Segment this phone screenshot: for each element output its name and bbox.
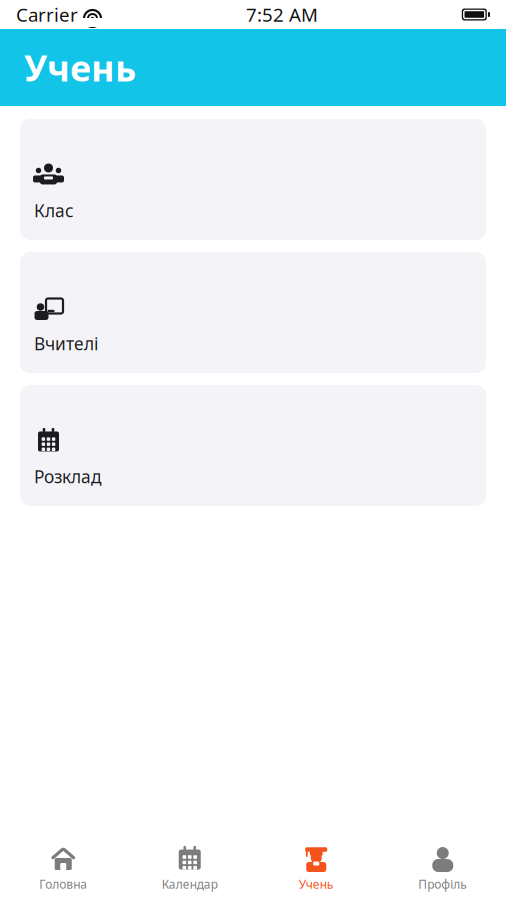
button[interactable]: Розклад: [20, 385, 486, 506]
staticText: Календар: [162, 876, 218, 892]
staticText: Профіль: [418, 876, 467, 892]
staticText: 7:52 AM: [246, 2, 318, 27]
staticText: Учень: [299, 876, 334, 892]
staticText: Головна: [39, 876, 87, 892]
button[interactable]: Профіль: [379, 838, 506, 900]
button[interactable]: Календар: [126, 838, 253, 900]
button[interactable]: Клас: [20, 119, 486, 240]
staticText: Розклад: [34, 465, 102, 488]
button[interactable]: Головна: [0, 838, 126, 900]
button[interactable]: Учень: [253, 838, 379, 900]
button[interactable]: Вчителі: [20, 252, 486, 373]
staticText: Вчителі: [34, 332, 98, 355]
staticText: Учень: [24, 44, 136, 91]
staticText: Carrier: [16, 2, 78, 27]
staticText: Клас: [34, 199, 74, 222]
